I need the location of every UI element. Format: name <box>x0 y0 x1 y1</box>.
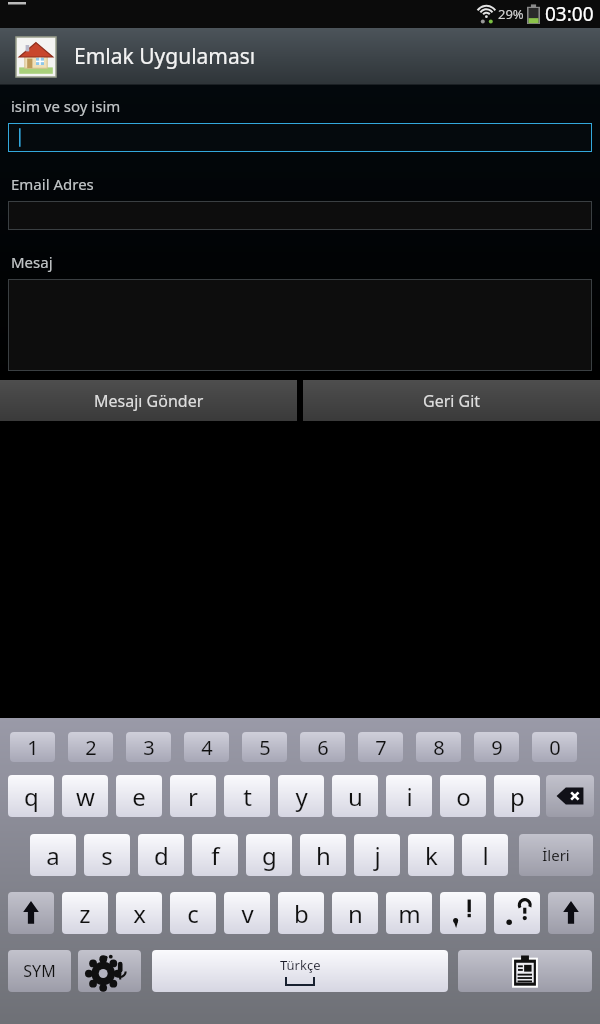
staticText: Geri Git <box>423 390 481 412</box>
button[interactable]: Clipboard <box>458 950 592 992</box>
button[interactable]: a <box>30 834 76 876</box>
staticText: 2 <box>85 734 97 761</box>
staticText: j <box>374 839 381 872</box>
staticText: 3 <box>143 734 155 761</box>
button[interactable]: k <box>408 834 454 876</box>
button[interactable] <box>8 123 592 152</box>
staticText: 03:00 <box>545 1 594 27</box>
button[interactable]: b <box>278 892 324 934</box>
button[interactable] <box>8 201 592 230</box>
button[interactable]: d <box>138 834 184 876</box>
staticText: b <box>294 897 309 930</box>
staticText: Türkçe <box>280 956 321 974</box>
button[interactable]: 1 <box>10 732 55 762</box>
staticText: 5 <box>259 734 271 761</box>
staticText: 8 <box>433 734 445 761</box>
button[interactable]: Shift <box>548 892 594 934</box>
button[interactable]: s <box>84 834 130 876</box>
button[interactable]: SYM <box>8 950 71 992</box>
staticText: 4 <box>201 734 213 761</box>
button[interactable]: 0 <box>532 732 577 762</box>
button[interactable]: c <box>170 892 216 934</box>
button[interactable]: x <box>116 892 162 934</box>
staticText: 9 <box>491 734 503 761</box>
button[interactable]: q <box>8 775 54 817</box>
button[interactable]: Comma <box>440 892 486 934</box>
button[interactable]: 3 <box>126 732 171 762</box>
button[interactable]: t <box>224 775 270 817</box>
button[interactable]: m <box>386 892 432 934</box>
button[interactable]: n <box>332 892 378 934</box>
staticText: Emlak Uygulaması <box>74 42 256 71</box>
staticText: h <box>316 839 331 872</box>
button[interactable]: 6 <box>300 732 345 762</box>
button[interactable]: f <box>192 834 238 876</box>
staticText: Mesajı Gönder <box>94 390 204 412</box>
staticText: p <box>510 780 525 813</box>
button[interactable]: i <box>386 775 432 817</box>
staticText: c <box>187 897 199 930</box>
button[interactable]: r <box>170 775 216 817</box>
button[interactable]: 2 <box>68 732 113 762</box>
button[interactable]: Shift <box>8 892 54 934</box>
button[interactable]: g <box>246 834 292 876</box>
staticText: k <box>425 839 438 872</box>
staticText: t <box>243 780 252 813</box>
button[interactable]: j <box>354 834 400 876</box>
staticText: x <box>133 897 146 930</box>
button[interactable]: y <box>278 775 324 817</box>
button[interactable]: 7 <box>358 732 403 762</box>
staticText: 7 <box>375 734 387 761</box>
staticText: i <box>406 780 413 813</box>
button[interactable]: h <box>300 834 346 876</box>
staticText: e <box>132 780 146 813</box>
button[interactable]: Space <box>152 950 448 992</box>
button[interactable]: Input settings <box>78 950 141 992</box>
staticText: d <box>154 839 169 872</box>
button[interactable]: Mesajı Gönder <box>0 380 297 421</box>
button[interactable]: 5 <box>242 732 287 762</box>
button[interactable]: v <box>224 892 270 934</box>
staticText: 1 <box>27 734 39 761</box>
staticText: Email Adres <box>11 174 94 194</box>
staticText: z <box>79 897 91 930</box>
staticText: 29% <box>498 5 524 23</box>
staticText: İleri <box>542 845 570 865</box>
staticText: v <box>241 897 254 930</box>
button[interactable] <box>8 279 592 371</box>
button[interactable]: Backspace <box>546 775 594 817</box>
staticText: y <box>295 780 308 813</box>
staticText: isim ve soy isim <box>11 96 121 116</box>
staticText: n <box>348 897 363 930</box>
staticText: r <box>188 780 198 813</box>
button[interactable]: z <box>62 892 108 934</box>
staticText: u <box>348 780 363 813</box>
staticText: g <box>262 839 277 872</box>
button[interactable]: 4 <box>184 732 229 762</box>
button[interactable]: u <box>332 775 378 817</box>
staticText: Mesaj <box>11 252 53 272</box>
button[interactable]: w <box>62 775 108 817</box>
button[interactable]: 9 <box>474 732 519 762</box>
staticText: q <box>24 780 39 813</box>
staticText: SYM <box>23 960 56 982</box>
button[interactable]: e <box>116 775 162 817</box>
button[interactable]: l <box>462 834 508 876</box>
staticText: 6 <box>317 734 329 761</box>
staticText: 0 <box>549 734 561 761</box>
button[interactable]: 8 <box>416 732 461 762</box>
staticText: a <box>46 839 60 872</box>
button[interactable]: Period <box>494 892 540 934</box>
button[interactable]: o <box>440 775 486 817</box>
staticText: s <box>101 839 113 872</box>
staticText: l <box>482 839 489 872</box>
staticText: w <box>76 780 95 813</box>
button[interactable]: İleri <box>519 834 593 876</box>
staticText: m <box>398 897 421 930</box>
button[interactable]: p <box>494 775 540 817</box>
button[interactable]: Geri Git <box>303 380 600 421</box>
staticText: f <box>211 839 220 872</box>
staticText: o <box>456 780 471 813</box>
